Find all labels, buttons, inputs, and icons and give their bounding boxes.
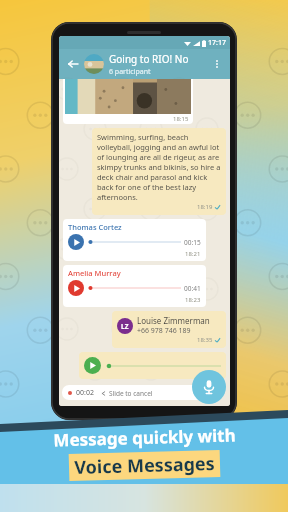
staticText: 18:19 [197,203,213,211]
staticText: Swimming, surfing, beach volleyball, jog… [97,132,221,202]
staticText: Slide to cancel [109,389,153,398]
staticText: 17:17 [208,38,226,48]
staticText: +66 978 746 189 [137,326,191,336]
staticText: 00:02 [76,388,94,398]
button[interactable]: Thomas Cortez [63,219,206,261]
button[interactable]: Record voice message [192,370,226,404]
staticText: LZ [121,322,129,331]
button[interactable]: Swimming, surfing, beach volleyball, jog… [92,128,226,215]
staticText: 6 participant [109,67,151,77]
button[interactable]: Group photo [84,54,104,74]
staticText: Message quickly with [53,423,236,451]
staticText: Thomas Cortez [68,222,122,232]
button[interactable]: Back [64,55,82,73]
staticText: Amelia Murray [68,268,121,278]
staticText: Louise Zimmerman [137,315,210,326]
staticText: 18:21 [185,250,201,258]
staticText: 18:23 [185,296,201,304]
staticText: Going to RIO! No pain… [109,52,209,66]
button[interactable]: Going to RIO! No pain… [109,52,209,77]
button[interactable]: Play voice message [84,357,101,374]
button[interactable]: 00:02 [62,385,210,400]
button[interactable]: Amelia Murray [63,265,206,307]
staticText: 18:35 [197,336,213,344]
staticText: 00:15 [184,238,201,247]
staticText: 00:41 [184,284,201,293]
button[interactable]: Play voice message [79,352,226,379]
staticText: Voice Messages [74,451,215,480]
button[interactable]: Play voice message [68,280,84,296]
button[interactable]: LZ [112,311,226,348]
button[interactable]: More options [209,56,225,72]
staticText: 18:15 [173,115,189,123]
button[interactable]: Play voice message [68,234,84,250]
button[interactable]: 18:15 [63,79,193,124]
